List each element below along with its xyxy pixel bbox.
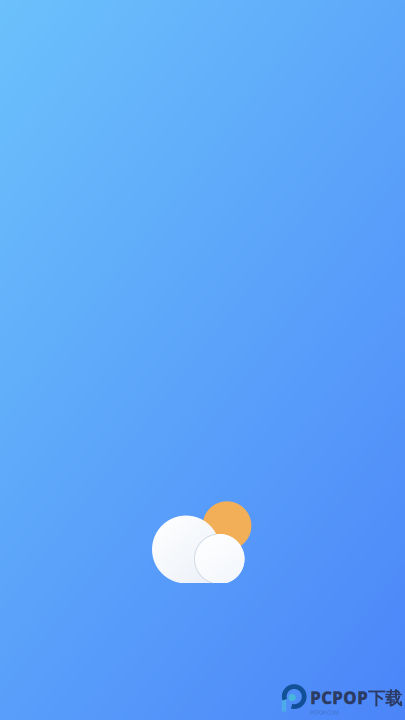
staticText: PCPOP.COM [310, 709, 339, 716]
staticText: PCPOP下载 [310, 686, 402, 709]
